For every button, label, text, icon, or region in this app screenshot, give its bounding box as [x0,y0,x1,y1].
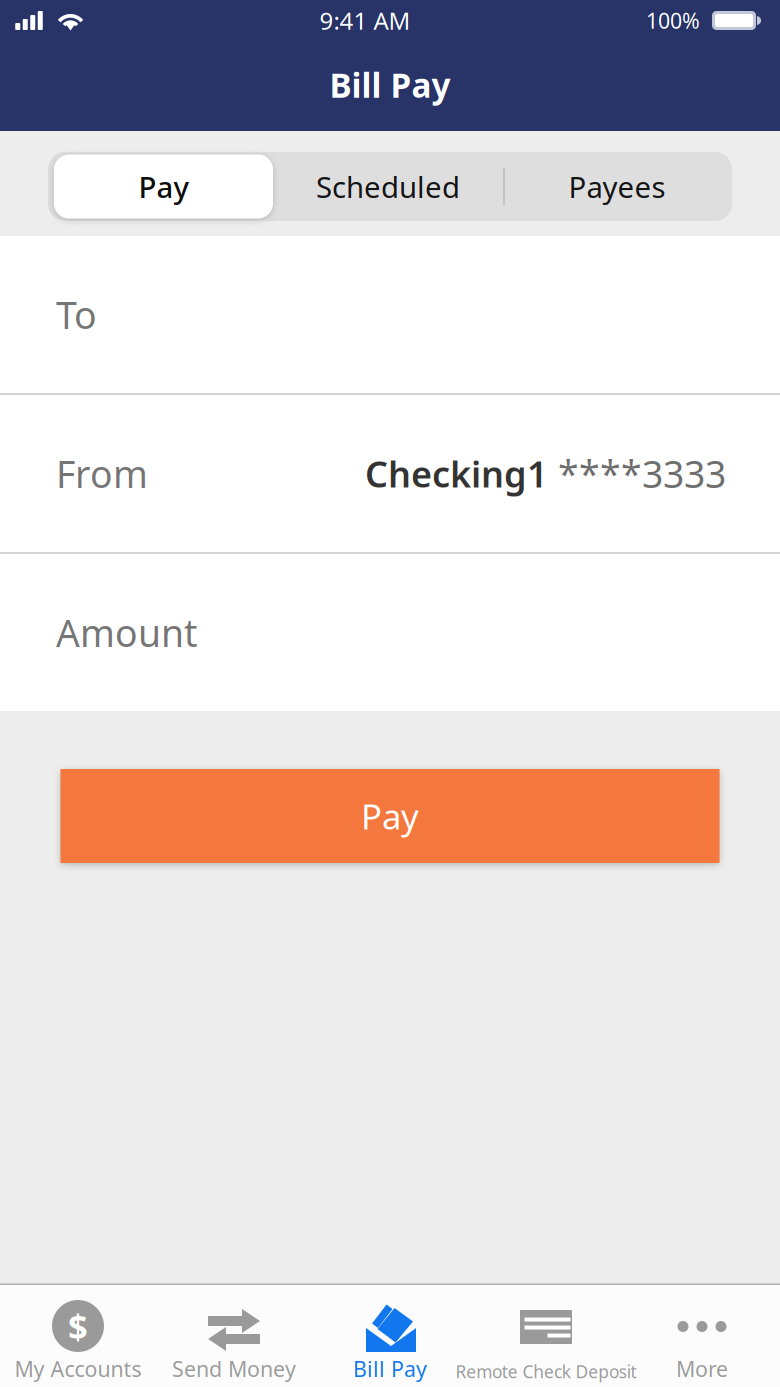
button[interactable]: $ [0,1285,156,1387]
staticText: Payees [568,167,665,206]
staticText: Send Money [172,1355,296,1383]
staticText: Checking1 [365,450,548,497]
staticText: My Accounts [14,1355,141,1383]
button[interactable]: Send Money [156,1285,312,1387]
staticText: To [56,290,97,339]
button[interactable]: From [0,395,780,552]
button[interactable]: Payees [503,154,731,218]
staticText: Bill Pay [353,1355,427,1383]
button[interactable]: Amount [0,554,780,711]
staticText: 100% [646,6,700,35]
button[interactable]: To [0,236,780,393]
staticText: Scheduled [316,167,460,206]
button[interactable]: Bill Pay [312,1285,468,1387]
staticText: From [56,449,148,498]
button[interactable]: Pay [60,769,719,863]
staticText: More [676,1355,728,1383]
button[interactable]: More [624,1285,780,1387]
staticText: ****3333 [548,449,726,498]
staticText: $ [68,1303,88,1349]
button[interactable]: Remote Check Deposit [468,1285,624,1387]
staticText: Bill Pay [329,63,450,107]
staticText: Amount [56,608,197,657]
staticText: 9:41 AM [319,5,410,36]
button[interactable]: Scheduled [273,154,503,218]
staticText: Pay [361,793,419,839]
staticText: Remote Check Deposit [455,1360,636,1383]
staticText: Pay [138,167,188,206]
button[interactable]: Pay [54,154,273,218]
